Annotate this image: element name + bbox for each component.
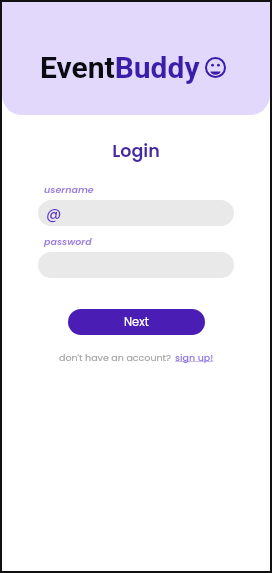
- staticText: Next: [124, 314, 149, 330]
- staticText: username: [44, 183, 94, 196]
- staticText: sign up!: [175, 351, 214, 364]
- staticText: don't have an account?: [59, 351, 172, 364]
- other: Smiley logo: [205, 57, 226, 78]
- button[interactable]: [38, 252, 234, 278]
- staticText: EventBuddy: [40, 50, 200, 85]
- staticText: password: [44, 235, 92, 248]
- staticText: @: [46, 203, 62, 224]
- button[interactable]: @: [38, 200, 234, 226]
- button[interactable]: Next: [68, 309, 205, 335]
- button[interactable]: sign up!: [175, 351, 214, 364]
- staticText: Login: [2, 139, 270, 164]
